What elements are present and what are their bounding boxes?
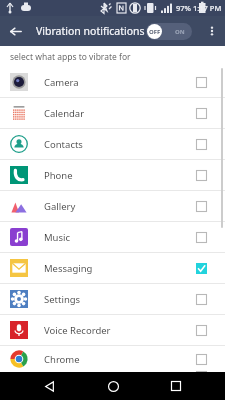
button[interactable]: More options: [199, 18, 225, 44]
button[interactable]: Gallery: [0, 191, 225, 222]
staticText: 97%: [176, 3, 191, 13]
button[interactable]: Calendar: [0, 98, 225, 129]
button[interactable]: Chrome: [0, 346, 225, 372]
staticText: ON: [175, 28, 185, 36]
staticText: Calendar: [44, 107, 196, 120]
button[interactable]: Voice Recorder: [0, 315, 225, 346]
button[interactable]: Camera: [0, 67, 225, 98]
button[interactable]: Back: [0, 16, 30, 46]
staticText: Camera: [44, 76, 196, 89]
button[interactable]: Settings: [0, 284, 225, 315]
staticText: Contacts: [44, 138, 196, 151]
button[interactable]: Music: [0, 222, 225, 253]
staticText: Phone: [44, 169, 196, 182]
staticText: Vibration notifications: [36, 24, 145, 38]
button[interactable]: Messaging: [0, 253, 225, 284]
button[interactable]: Home: [99, 372, 127, 400]
staticText: Messaging: [44, 262, 196, 275]
staticText: 1:17 PM: [193, 3, 222, 13]
staticText: select what apps to vibrate for: [10, 51, 131, 63]
button[interactable]: Recent apps: [162, 372, 190, 400]
staticText: Voice Recorder: [44, 324, 196, 337]
button[interactable]: Contacts: [0, 129, 225, 160]
staticText: Chrome: [44, 353, 196, 366]
staticText: Settings: [44, 293, 196, 306]
staticText: Gallery: [44, 200, 196, 213]
button[interactable]: Back: [35, 372, 63, 400]
staticText: Music: [44, 231, 196, 244]
button[interactable]: OFF: [146, 23, 192, 40]
button[interactable]: Phone: [0, 160, 225, 191]
staticText: OFF: [149, 28, 161, 36]
